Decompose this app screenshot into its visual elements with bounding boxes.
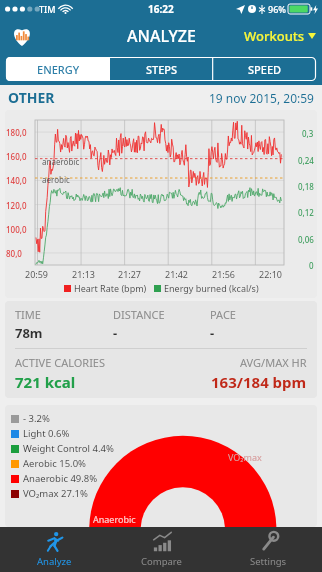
staticText: TIME	[15, 307, 41, 322]
staticText: Settings	[250, 555, 287, 568]
staticText: 21:56	[212, 268, 236, 280]
staticText: 0,18	[298, 181, 314, 192]
button[interactable]: SPEED	[213, 57, 316, 81]
staticText: Analyze	[37, 555, 72, 568]
staticText: Workouts	[244, 27, 305, 45]
staticText: PACE	[210, 307, 236, 322]
staticText: 16:22	[148, 2, 174, 16]
staticText: DISTANCE	[113, 307, 165, 322]
staticText: 180,0	[6, 127, 27, 138]
staticText: Compare	[141, 555, 182, 568]
staticText: VO₂max	[228, 451, 262, 463]
staticText: -	[113, 324, 118, 342]
staticText: Anaerobic 49.8%	[23, 472, 98, 485]
staticText: 120,0	[6, 200, 27, 211]
staticText: OTHER	[8, 88, 55, 107]
staticText: STEPS	[146, 62, 178, 77]
staticText: Light 0.6%	[23, 427, 70, 440]
staticText: 96%	[268, 3, 286, 15]
staticText: SPEED	[248, 62, 282, 77]
staticText: 0,3	[302, 128, 314, 139]
staticText: 78m	[15, 324, 43, 342]
staticText: Aerobic 15.0%	[23, 457, 86, 470]
staticText: ANALYZE	[127, 25, 196, 47]
staticText: anaerobic	[42, 156, 80, 167]
staticText: TIM	[39, 3, 56, 15]
staticText: - 3.2%	[23, 412, 50, 425]
staticText: 0,24	[298, 155, 314, 166]
staticText: aerobic	[42, 174, 70, 185]
staticText: -	[210, 324, 215, 342]
staticText: Anaerobic	[93, 513, 136, 525]
staticText: Energy burned (kcal/s)	[164, 282, 259, 294]
staticText: 721 kcal	[15, 372, 76, 392]
staticText: 160,0	[6, 151, 27, 162]
staticText: 22:10	[259, 268, 283, 280]
staticText: AVG/MAX HR	[240, 355, 307, 370]
staticText: 21:27	[118, 268, 142, 280]
staticText: 0,06	[298, 234, 314, 245]
staticText: 21:42	[165, 268, 189, 280]
button[interactable]: App logo	[10, 24, 34, 48]
staticText: ENERGY	[37, 62, 80, 77]
staticText: 0,12	[298, 207, 314, 218]
button[interactable]: Settings	[215, 527, 322, 572]
staticText: ACTIVE CALORIES	[15, 355, 106, 370]
staticText: 19 nov 2015, 20:59	[209, 90, 314, 106]
staticText: 0	[309, 260, 314, 271]
button[interactable]: STEPS	[110, 57, 213, 81]
staticText: Weight Control 4.4%	[23, 442, 114, 455]
button[interactable]: ENERGY	[6, 57, 110, 81]
staticText: Heart Rate (bpm)	[74, 282, 147, 294]
staticText: 100,0	[6, 224, 27, 235]
staticText: VO₂max 27.1%	[23, 487, 88, 500]
button[interactable]: Compare	[108, 527, 215, 572]
staticText: 21:13	[72, 268, 96, 280]
staticText: 20:59	[25, 268, 49, 280]
staticText: 163/184 bpm	[211, 372, 307, 392]
staticText: 80,0	[6, 248, 22, 259]
staticText: 140,0	[6, 175, 27, 186]
button[interactable]: Analyze	[0, 527, 108, 572]
button[interactable]: Workouts	[244, 27, 316, 45]
